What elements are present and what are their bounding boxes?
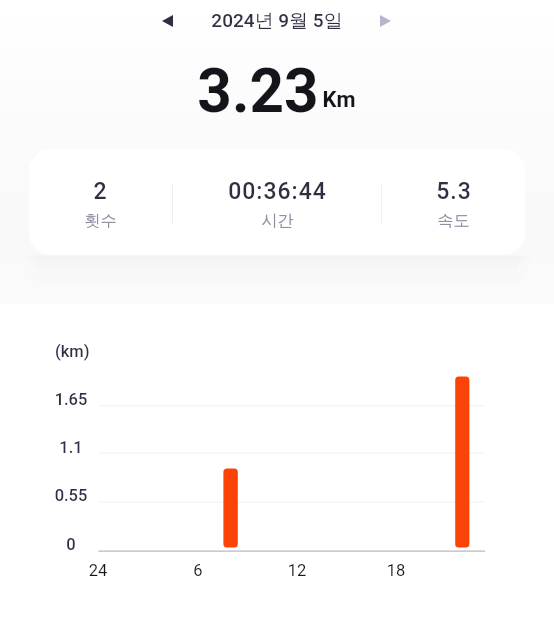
staticText: 5.3 [436,178,472,205]
staticText: 1.1 [41,438,101,457]
staticText: 2024년 9월 5일 [211,9,343,33]
staticText: 00:36:44 [228,178,327,205]
button[interactable]: Previous day [150,4,184,38]
staticText: 1.65 [41,390,101,409]
staticText: 3.23 [197,56,319,116]
staticText: Km [322,87,356,113]
button[interactable]: 5.3 [382,178,525,230]
staticText: 0 [41,535,101,554]
button[interactable]: 2 [29,178,172,230]
staticText: (km) [55,342,90,361]
staticText: 6 [173,561,223,580]
staticText: 0.55 [41,486,101,505]
staticText: 시간 [261,210,294,230]
staticText: 24 [73,561,123,580]
staticText: 12 [272,561,322,580]
staticText: 2 [93,178,108,205]
button[interactable]: Next day [368,4,402,38]
staticText: 횟수 [84,210,117,230]
staticText: 속도 [437,210,470,230]
staticText: 18 [371,561,421,580]
button[interactable]: 00:36:44 [173,178,381,230]
